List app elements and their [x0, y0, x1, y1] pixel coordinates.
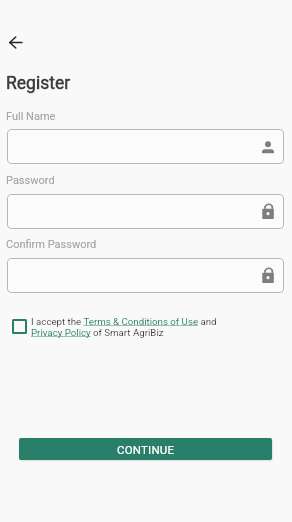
staticText: I accept the Terms & Conditions of Use a…: [31, 316, 226, 338]
button[interactable]: CONTINUE: [19, 438, 272, 460]
staticText: Full Name: [6, 110, 56, 123]
button[interactable]: I accept the Terms & Conditions of Use a…: [11, 316, 226, 338]
button[interactable]: Back: [3, 30, 28, 55]
button[interactable]: Confirm Password: [7, 258, 284, 293]
button[interactable]: Full Name: [7, 129, 284, 164]
staticText: Confirm Password: [6, 238, 97, 251]
staticText: Register: [6, 73, 71, 94]
staticText: CONTINUE: [117, 443, 175, 456]
staticText: Password: [6, 174, 55, 187]
button[interactable]: Password: [7, 194, 284, 229]
